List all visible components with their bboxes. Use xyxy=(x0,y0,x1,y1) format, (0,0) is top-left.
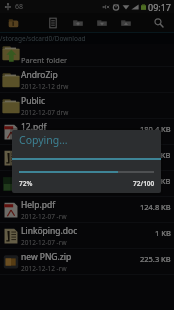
staticText: /storage/sdcard0/Download xyxy=(0,34,86,43)
button[interactable]: image.png xyxy=(0,171,174,196)
button[interactable]: New folder xyxy=(70,13,86,33)
staticText: 180.4 KB xyxy=(140,124,171,134)
staticText: new PNG.zip xyxy=(21,251,72,263)
button[interactable]: Public xyxy=(0,93,174,118)
staticText: 12.pdf xyxy=(21,121,47,133)
button[interactable]: Linköping.doc xyxy=(0,223,174,248)
button[interactable]: Select all xyxy=(45,13,61,33)
staticText: 225.3 KB xyxy=(140,254,171,264)
staticText: Public xyxy=(21,95,46,107)
staticText: AndroZip xyxy=(21,69,58,81)
staticText: image.png xyxy=(21,173,64,185)
staticText: Readme.doc xyxy=(21,147,71,159)
staticText: 2012-12-07 -rw xyxy=(21,238,67,247)
button[interactable]: Move here xyxy=(118,13,134,33)
button[interactable]: Search xyxy=(151,13,167,33)
button[interactable]: App home xyxy=(4,14,22,32)
button[interactable]: Readme.doc xyxy=(0,145,174,170)
button[interactable]: Copy here xyxy=(94,13,110,33)
staticText: 2012-12-12 drw xyxy=(21,82,69,91)
staticText: 72% xyxy=(19,179,33,188)
staticText: 09:17 xyxy=(148,1,172,13)
button[interactable]: AndroZip xyxy=(0,67,174,92)
staticText: 2012-12-07 -rw xyxy=(21,186,67,195)
staticText: 124.8 KB xyxy=(140,202,171,212)
staticText: 72/100 xyxy=(133,179,155,188)
staticText: 2012-12-07 -rw xyxy=(21,212,67,221)
staticText: 2012-12-07 drw xyxy=(21,108,69,117)
staticText: 1 KB xyxy=(155,228,171,238)
button[interactable]: Help.pdf xyxy=(0,197,174,222)
staticText: 68 xyxy=(15,2,24,12)
staticText: 98.1 KB xyxy=(144,176,171,186)
staticText: Copying... xyxy=(19,133,68,147)
staticText: Linköping.doc xyxy=(21,225,78,237)
button[interactable]: Parent folder xyxy=(0,44,174,66)
staticText: 2012-12-12 -rw xyxy=(21,264,67,273)
button[interactable]: 12.pdf xyxy=(0,119,174,144)
staticText: 2012-12-07 -rw xyxy=(21,134,67,143)
button[interactable]: new PNG.zip xyxy=(0,249,174,274)
staticText: Help.pdf xyxy=(21,199,56,211)
staticText: Parent folder xyxy=(21,55,68,65)
staticText: 34.2 KB xyxy=(144,150,171,160)
